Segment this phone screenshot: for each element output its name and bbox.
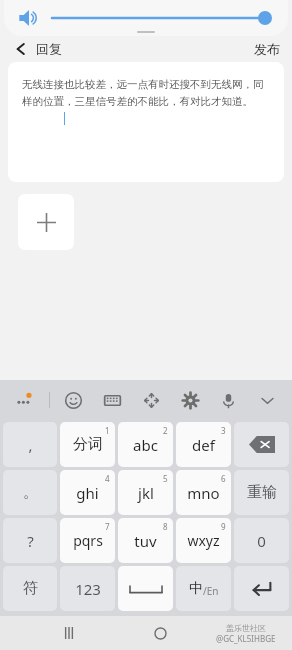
button[interactable]: wxyz xyxy=(176,518,231,563)
staticText: 5 xyxy=(163,473,168,484)
button[interactable]: 分词 xyxy=(60,422,115,467)
button[interactable]: ? xyxy=(3,518,57,563)
staticText: 分词 xyxy=(73,435,103,454)
staticText: , xyxy=(28,435,33,455)
staticText: @GC_KL5IHBGE xyxy=(216,633,276,644)
staticText: wxyz xyxy=(187,531,220,550)
button[interactable]: pqrs xyxy=(60,518,115,563)
button[interactable]: Enter xyxy=(234,566,289,611)
button[interactable]: 发布 xyxy=(254,41,280,57)
button[interactable]: mno xyxy=(176,470,231,515)
staticText: 123 xyxy=(75,579,101,599)
staticText: jkl xyxy=(138,483,154,503)
button[interactable]: Voice input xyxy=(213,385,243,415)
staticText: 中 xyxy=(189,580,203,598)
staticText: def xyxy=(192,435,215,455)
button[interactable]: def xyxy=(176,422,231,467)
staticText: pqrs xyxy=(73,531,103,550)
staticText: 6 xyxy=(221,473,226,484)
staticText: 0 xyxy=(257,531,266,551)
staticText: 3 xyxy=(221,425,226,436)
staticText: 符 xyxy=(23,579,38,598)
staticText: /En xyxy=(203,584,219,598)
staticText: 盖乐世社区 xyxy=(226,623,266,633)
button[interactable]: Keyboard layout xyxy=(97,385,127,415)
button[interactable]: 无线连接也比较差，远一点有时还搜不到无线网，同样的位置，三星信号差的不能比，有对… xyxy=(8,62,284,182)
staticText: mno xyxy=(187,483,220,503)
button[interactable] xyxy=(52,6,274,30)
staticText: 无线连接也比较差，远一点有时还搜不到无线网，同样的位置，三星信号差的不能比，有对… xyxy=(22,78,272,108)
button[interactable]: tuv xyxy=(118,518,173,563)
staticText: 回复 xyxy=(36,41,62,57)
staticText: 9 xyxy=(221,521,226,532)
other: Back xyxy=(12,40,30,58)
button[interactable]: ghi xyxy=(60,470,115,515)
staticText: 8 xyxy=(163,521,168,532)
button[interactable]: Backspace xyxy=(234,422,289,467)
button[interactable]: More xyxy=(10,385,40,415)
button[interactable]: , xyxy=(3,422,57,467)
staticText: 2 xyxy=(163,425,168,436)
button[interactable]: Recents xyxy=(52,616,86,650)
staticText: 1 xyxy=(105,425,110,436)
button[interactable]: 符 xyxy=(3,566,57,611)
staticText: abc xyxy=(133,435,158,455)
staticText: tuv xyxy=(134,531,157,551)
staticText: 发布 xyxy=(254,41,280,57)
button[interactable]: 。 xyxy=(3,470,57,515)
button[interactable]: Home xyxy=(143,616,177,650)
staticText: 4 xyxy=(105,473,110,484)
staticText: 7 xyxy=(105,521,110,532)
button[interactable]: 重输 xyxy=(234,470,289,515)
staticText: ghi xyxy=(76,483,99,503)
button[interactable]: Back xyxy=(12,40,62,58)
button[interactable]: abc xyxy=(118,422,173,467)
button[interactable]: Move cursor xyxy=(136,385,166,415)
staticText: 重输 xyxy=(247,483,277,502)
button[interactable]: jkl xyxy=(118,470,173,515)
button[interactable]: Emoji xyxy=(58,385,88,415)
staticText: ? xyxy=(27,531,34,551)
button[interactable]: Settings xyxy=(175,385,205,415)
button[interactable]: Volume xyxy=(16,5,42,31)
button[interactable]: Space xyxy=(118,566,173,611)
staticText: 。 xyxy=(23,483,38,502)
button[interactable]: Hide keyboard xyxy=(252,385,282,415)
button[interactable]: 中 xyxy=(176,566,231,611)
button[interactable]: 0 xyxy=(234,518,289,563)
button[interactable]: Add photo xyxy=(18,194,74,250)
button[interactable]: 123 xyxy=(60,566,115,611)
